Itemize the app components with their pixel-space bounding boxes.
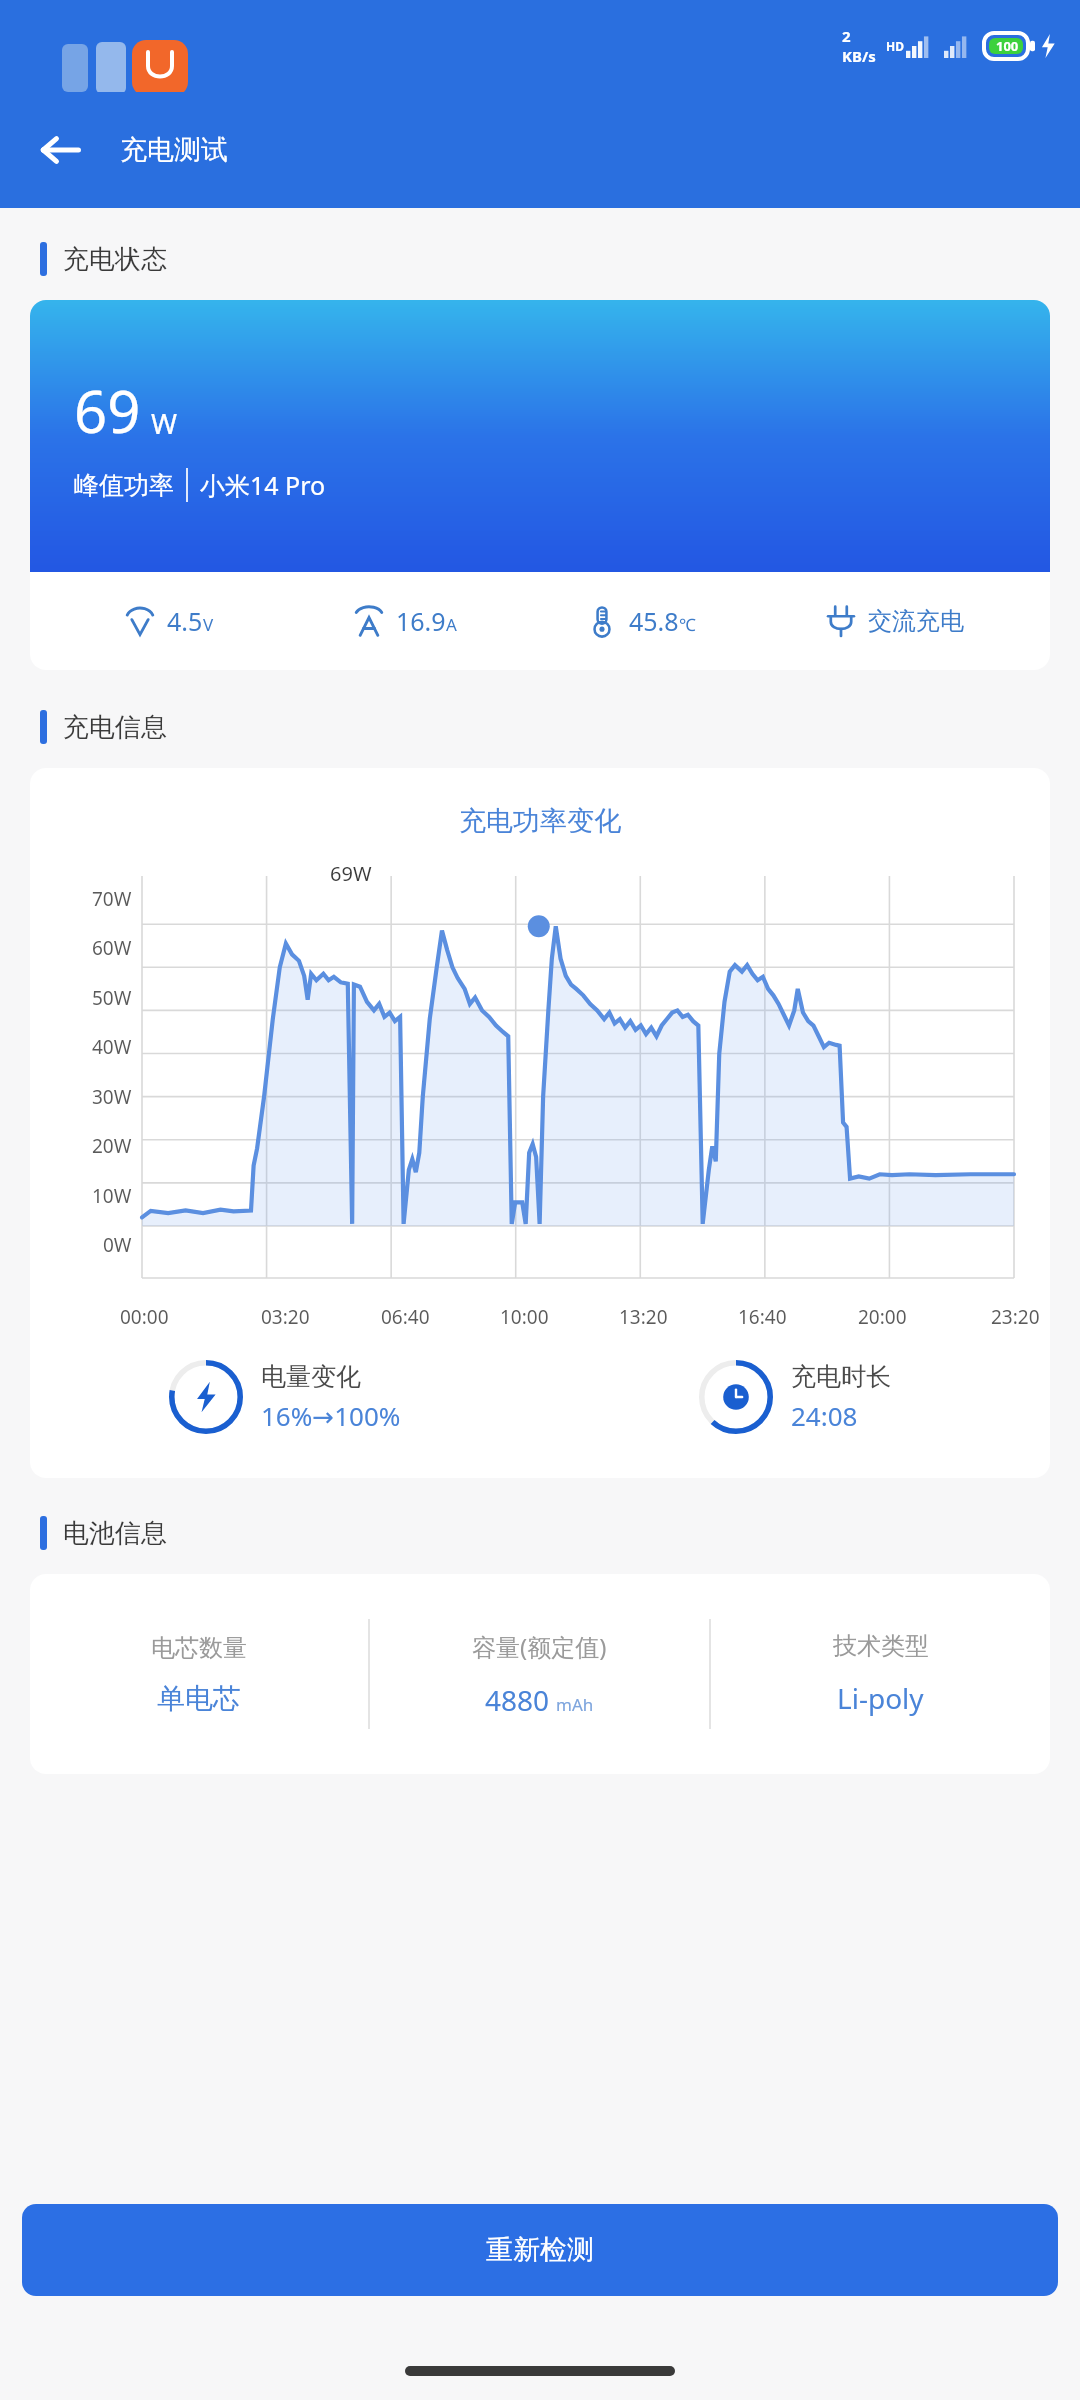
staticText: 10W — [92, 1183, 132, 1209]
staticText: 充电信息 — [63, 711, 167, 744]
staticText: 30W — [92, 1084, 132, 1110]
staticText: 16.9 — [396, 604, 446, 638]
staticText: 峰值功率 — [74, 470, 174, 501]
staticText: 电池信息 — [63, 1517, 167, 1550]
staticText: 2 — [842, 26, 851, 46]
staticText: 4.5 — [167, 604, 203, 638]
staticText: 20:00 — [858, 1304, 907, 1330]
staticText: 电芯数量 — [151, 1633, 247, 1663]
button[interactable]: 重新检测 — [22, 2204, 1058, 2296]
staticText: 充电测试 — [120, 133, 228, 167]
staticText: 24:08 — [791, 1398, 858, 1433]
staticText: 45.8 — [629, 604, 679, 638]
staticText: 4880 — [485, 1681, 550, 1719]
staticText: 69W — [330, 860, 372, 887]
staticText: 16%→100% — [261, 1398, 401, 1433]
staticText: 电量变化 — [261, 1361, 361, 1392]
staticText: 小米14 Pro — [200, 468, 326, 502]
staticText: mAh — [556, 1693, 594, 1716]
staticText: 16:40 — [738, 1304, 787, 1330]
button[interactable]: 69 — [30, 300, 1050, 670]
staticText: 40W — [92, 1034, 132, 1060]
button[interactable]: 充电时长 — [540, 1360, 1050, 1434]
staticText: 技术类型 — [833, 1631, 929, 1661]
button[interactable]: 电芯数量 — [30, 1574, 1050, 1774]
staticText: ℃ — [679, 613, 696, 636]
staticText: V — [203, 613, 214, 636]
staticText: W — [151, 404, 178, 442]
button[interactable]: 返回 — [28, 118, 92, 182]
staticText: 交流充电 — [868, 606, 964, 636]
staticText: 50W — [92, 985, 132, 1011]
staticText: 20W — [92, 1133, 132, 1159]
staticText: Li-poly — [837, 1679, 924, 1717]
button[interactable]: 充电功率变化 — [30, 768, 1050, 1478]
staticText: 重新检测 — [486, 2233, 594, 2267]
staticText: HD — [886, 38, 904, 54]
staticText: 容量(额定值) — [472, 1630, 607, 1663]
staticText: 充电状态 — [63, 243, 167, 276]
staticText: 单电芯 — [157, 1681, 241, 1716]
staticText: 00:00 — [120, 1304, 169, 1330]
staticText: 充电时长 — [791, 1361, 891, 1392]
staticText: KB/s — [842, 46, 876, 66]
staticText: 0W — [103, 1232, 132, 1258]
staticText: 60W — [92, 935, 132, 961]
staticText: 100 — [996, 37, 1019, 55]
staticText: 13:20 — [619, 1304, 668, 1330]
button[interactable]: 电量变化 — [30, 1360, 540, 1434]
staticText: 23:20 — [991, 1304, 1040, 1330]
staticText: 03:20 — [261, 1304, 310, 1330]
staticText: A — [446, 613, 457, 636]
staticText: 10:00 — [500, 1304, 549, 1330]
staticText: 70W — [92, 886, 132, 912]
staticText: 69 — [74, 371, 141, 450]
staticText: 06:40 — [381, 1304, 430, 1330]
staticText: 充电功率变化 — [30, 804, 1050, 838]
